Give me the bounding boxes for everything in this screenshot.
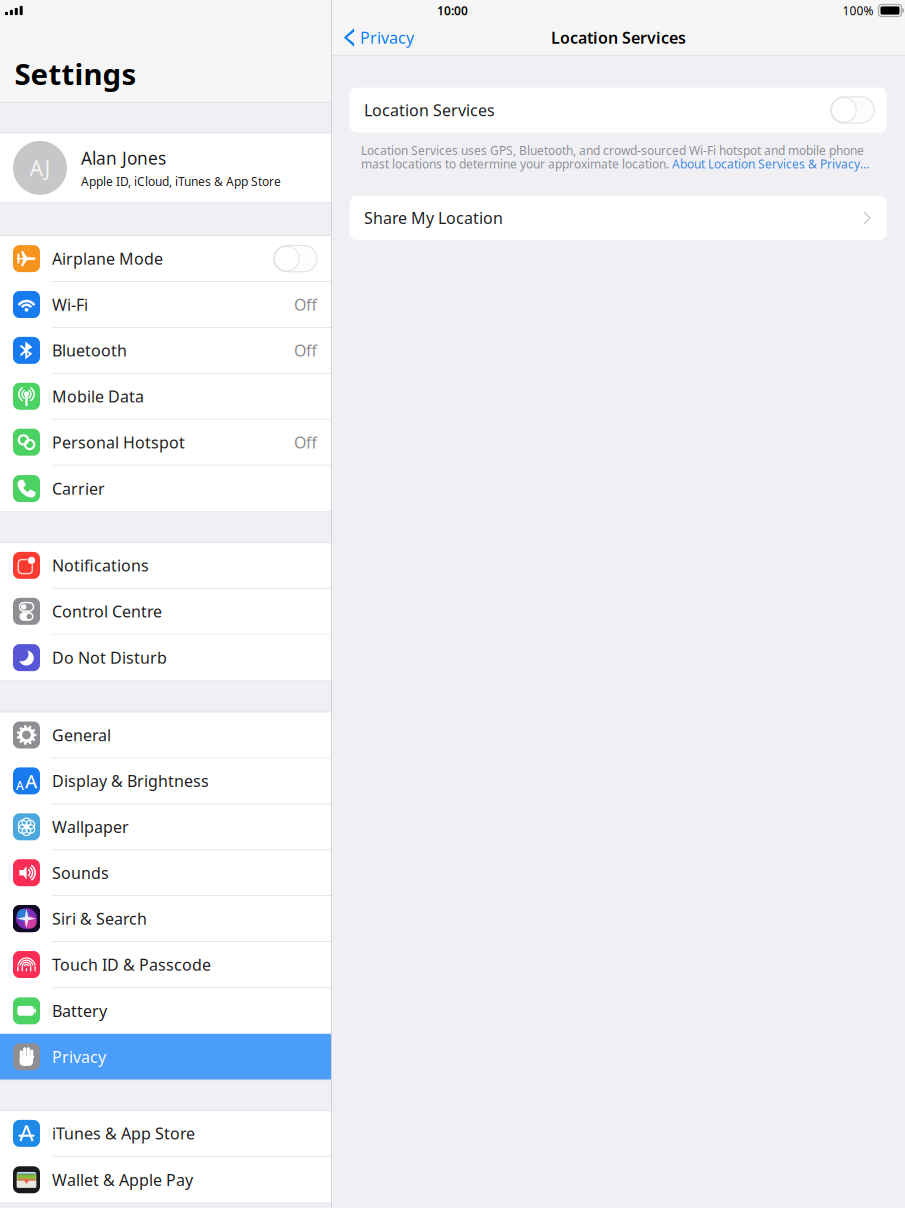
button[interactable]: Wallpaper [0,804,331,850]
staticText: Bluetooth [52,340,127,361]
button[interactable]: Battery [0,988,331,1034]
staticText: Off [294,340,317,361]
staticText: Touch ID & Passcode [52,954,211,975]
button[interactable]: Wallet & Apple Pay [0,1157,331,1203]
button[interactable]: Touch ID & Passcode [0,942,331,988]
staticText: A [25,768,37,793]
staticText: Alan Jones [81,146,166,169]
staticText: Off [294,294,317,315]
button[interactable]: Airplane Mode [0,236,331,282]
button[interactable]: General [0,712,331,758]
staticText: 10:00 [437,2,468,18]
staticText: Sounds [52,862,109,883]
staticText: Location Services [364,99,495,121]
button[interactable]: iTunes & App Store [0,1111,331,1157]
staticText: Wallet & Apple Pay [52,1169,193,1190]
staticText: Location Services uses GPS, Bluetooth, a… [361,142,864,158]
button[interactable]: AJ [0,133,331,202]
button[interactable]: Privacy [332,19,426,55]
button[interactable]: Share My Location [332,196,905,240]
staticText: Display & Brightness [52,770,209,791]
staticText: Control Centre [52,601,162,622]
staticText: Personal Hotspot [52,432,185,453]
staticText: Mobile Data [52,386,144,407]
staticText: Airplane Mode [52,248,163,269]
button[interactable]: Privacy [0,1034,331,1080]
staticText: Do Not Disturb [52,647,167,668]
staticText: Notifications [52,555,149,576]
staticText: Privacy [360,27,414,48]
staticText: Wallpaper [52,816,129,837]
button[interactable]: Siri & Search [0,896,331,942]
staticText: mast locations to determine your approxi… [361,156,672,172]
staticText: General [52,724,111,746]
staticText: Location Services [551,27,686,48]
staticText: Settings [14,54,136,93]
button[interactable]: Mobile Data [0,374,331,420]
staticText: Wi-Fi [52,294,88,315]
button[interactable]: Wi-Fi [0,282,331,328]
button[interactable]: Personal Hotspot [0,420,331,466]
staticText: AJ [29,154,50,182]
button[interactable]: A [0,758,331,804]
staticText: Off [294,432,317,453]
staticText: A [16,777,24,793]
staticText: Siri & Search [52,908,147,929]
staticText: About Location Services & Privacy… [672,156,869,172]
staticText: Battery [52,1000,107,1021]
staticText: Carrier [52,478,105,499]
button[interactable]: Notifications [0,543,331,589]
button[interactable]: Bluetooth [0,328,331,374]
staticText: 100% [842,2,873,18]
button[interactable]: Carrier [0,466,331,511]
button[interactable]: Control Centre [0,589,331,635]
staticText: Share My Location [364,207,503,228]
staticText: Privacy [52,1046,106,1067]
staticText: iTunes & App Store [52,1123,195,1144]
button[interactable]: Do Not Disturb [0,635,331,681]
button[interactable]: Sounds [0,850,331,896]
staticText: Apple ID, iCloud, iTunes & App Store [81,173,281,189]
